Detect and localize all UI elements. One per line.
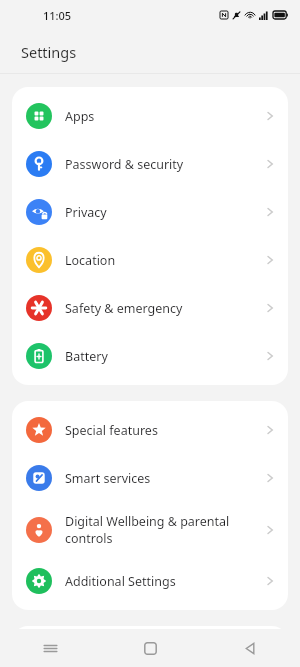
button[interactable] bbox=[12, 626, 288, 667]
staticText: Settings bbox=[21, 42, 77, 62]
button[interactable]: Privacy bbox=[12, 188, 288, 236]
button[interactable]: Location bbox=[12, 236, 288, 284]
staticText: 11:05 bbox=[43, 8, 72, 23]
button[interactable]: Smart services bbox=[12, 454, 288, 502]
staticText: Additional Settings bbox=[65, 573, 176, 590]
button[interactable]: Battery bbox=[12, 332, 288, 380]
staticText: Safety & emergency bbox=[65, 300, 183, 317]
button[interactable]: Home bbox=[100, 629, 200, 667]
button[interactable]: Special features bbox=[12, 406, 288, 454]
staticText: Apps bbox=[65, 108, 95, 125]
staticText: Password & security bbox=[65, 156, 184, 173]
button[interactable]: Safety & emergency bbox=[12, 284, 288, 332]
button[interactable]: Additional Settings bbox=[12, 557, 288, 605]
button[interactable]: Recent apps bbox=[0, 629, 100, 667]
staticText: Battery bbox=[65, 348, 108, 365]
button[interactable]: Apps bbox=[12, 92, 288, 140]
staticText: Smart services bbox=[65, 470, 151, 487]
staticText: Location bbox=[65, 252, 116, 269]
staticText: Special features bbox=[65, 422, 158, 439]
staticText: Privacy bbox=[65, 204, 107, 221]
button[interactable]: Back bbox=[200, 629, 300, 667]
button[interactable]: Digital Wellbeing & parental controls bbox=[12, 502, 288, 557]
staticText: Digital Wellbeing & parental controls bbox=[65, 513, 257, 546]
button[interactable]: Password & security bbox=[12, 140, 288, 188]
